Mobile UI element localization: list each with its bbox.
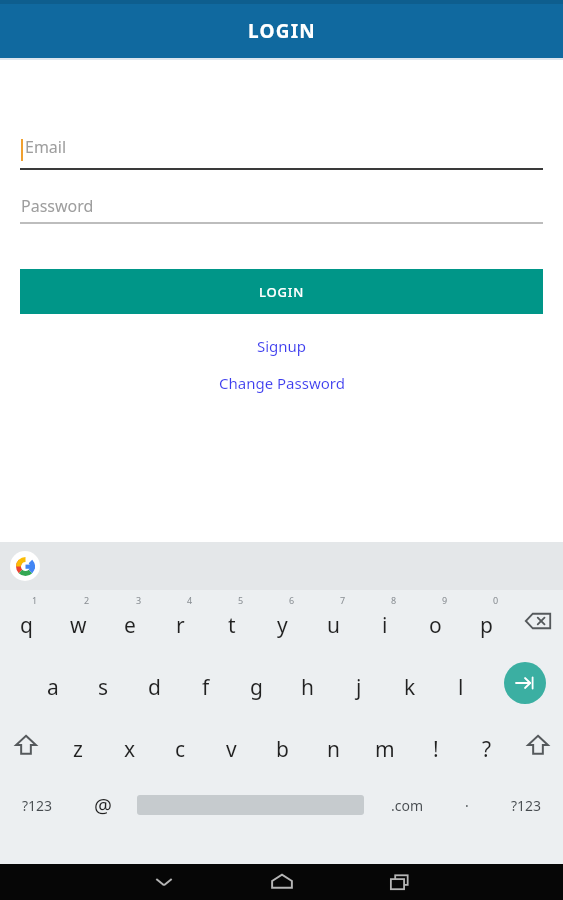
button[interactable]: Shift [0,714,52,776]
staticText: Password [21,195,94,217]
button[interactable]: LOGIN [20,269,543,314]
button[interactable]: Backspace [512,590,563,652]
staticText: a [47,673,59,702]
staticText: ?123 [511,796,542,815]
staticText: 8 [391,594,397,606]
staticText: ?123 [22,796,53,815]
staticText: LOGIN [259,283,305,301]
staticText: 2 [84,594,90,606]
button[interactable]: k [384,652,435,714]
button[interactable]: Shift [512,714,563,776]
button[interactable]: c [155,714,206,776]
button[interactable]: 1 [0,590,52,652]
staticText: z [73,735,83,764]
staticText: y [277,611,288,640]
staticText: 1 [32,594,38,606]
staticText: p [480,611,493,640]
button[interactable]: 4 [155,590,206,652]
staticText: · [465,796,469,815]
staticText: h [301,673,314,702]
staticText: 3 [136,594,142,606]
button[interactable]: ?123 [489,776,563,834]
staticText: Signup [257,336,307,356]
button[interactable]: ? [461,714,512,776]
staticText: 5 [238,594,244,606]
button[interactable]: Space [131,776,370,834]
staticText: 4 [187,594,193,606]
button[interactable]: x [104,714,155,776]
button[interactable]: z [52,714,104,776]
button[interactable]: m [359,714,410,776]
button[interactable]: Email [21,136,542,168]
staticText: w [70,611,87,640]
staticText: 6 [289,594,295,606]
button[interactable]: · [444,776,489,834]
staticText: o [429,611,442,640]
button[interactable]: @ [74,776,131,834]
button[interactable]: .com [370,776,444,834]
button[interactable]: 8 [359,590,410,652]
staticText: 7 [340,594,346,606]
staticText: c [175,735,186,764]
staticText: r [176,611,185,640]
button[interactable]: h [282,652,333,714]
staticText: i [382,611,388,640]
staticText: s [98,673,109,702]
button[interactable]: 5 [206,590,257,652]
staticText: ! [433,735,439,764]
button[interactable]: 6 [257,590,308,652]
button[interactable]: Google [10,551,40,581]
staticText: l [458,673,464,702]
staticText: g [250,673,263,702]
button[interactable]: Signup [0,332,563,360]
button[interactable]: Next [486,652,563,714]
button[interactable]: f [180,652,231,714]
staticText: LOGIN [248,18,316,44]
button[interactable]: ?123 [0,776,74,834]
button[interactable]: Recents [341,864,459,900]
staticText: t [228,611,236,640]
staticText: q [20,611,33,640]
button[interactable]: 0 [461,590,512,652]
button[interactable]: j [333,652,384,714]
staticText: e [124,611,136,640]
button[interactable]: Password [21,190,542,222]
button[interactable]: b [257,714,308,776]
button[interactable]: n [308,714,359,776]
button[interactable]: d [129,652,180,714]
staticText: ? [482,735,492,764]
button[interactable]: 2 [52,590,104,652]
staticText: @ [94,792,112,819]
staticText: x [124,735,136,764]
button[interactable]: Home [223,864,341,900]
staticText: .com [391,796,424,815]
staticText: j [356,673,362,702]
button[interactable]: 9 [410,590,461,652]
button[interactable]: 7 [308,590,359,652]
button[interactable]: l [435,652,486,714]
button[interactable]: s [78,652,129,714]
staticText: Email [25,136,67,158]
staticText: 9 [442,594,448,606]
staticText: v [226,735,237,764]
staticText: n [327,735,340,764]
staticText: b [276,735,289,764]
button[interactable]: 3 [104,590,155,652]
button[interactable]: g [231,652,282,714]
button[interactable]: Change Password [0,369,563,397]
staticText: f [202,673,210,702]
staticText: 0 [493,594,499,606]
staticText: m [375,735,395,764]
staticText: Change Password [219,373,345,393]
button[interactable]: a [27,652,78,714]
staticText: u [327,611,340,640]
button[interactable]: ! [410,714,461,776]
button[interactable]: v [206,714,257,776]
staticText: k [404,673,416,702]
button[interactable]: Hide keyboard [105,864,223,900]
staticText: d [148,673,161,702]
